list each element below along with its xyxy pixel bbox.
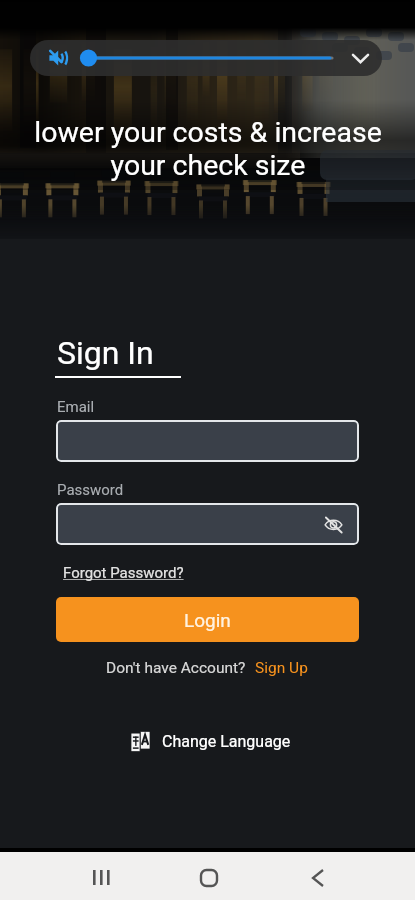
- staticText: Sign In: [57, 334, 154, 372]
- button[interactable]: Sign Up: [255, 659, 308, 677]
- staticText: Password: [57, 481, 124, 499]
- button[interactable]: Change Language: [3, 731, 415, 752]
- staticText: Sign Up: [255, 659, 308, 677]
- staticText: Email: [57, 398, 95, 416]
- button[interactable]: Show password: [321, 512, 345, 536]
- button[interactable]: Mute: [49, 48, 69, 68]
- button[interactable]: [78, 44, 342, 72]
- staticText: Forgot Password?: [63, 564, 184, 582]
- button[interactable]: Home: [186, 855, 231, 900]
- button[interactable]: Back: [295, 855, 340, 900]
- staticText: Don't have Account?: [106, 659, 246, 677]
- staticText: Login: [184, 609, 231, 631]
- staticText: Change Language: [162, 732, 291, 751]
- staticText: lower your costs & increase your check s…: [34, 116, 382, 182]
- button[interactable]: Recent apps: [79, 855, 124, 900]
- button[interactable]: Show password: [56, 503, 359, 545]
- button[interactable]: Collapse: [346, 44, 375, 73]
- button[interactable]: [56, 420, 359, 462]
- button[interactable]: Forgot Password?: [63, 564, 184, 582]
- button[interactable]: Login: [56, 597, 359, 642]
